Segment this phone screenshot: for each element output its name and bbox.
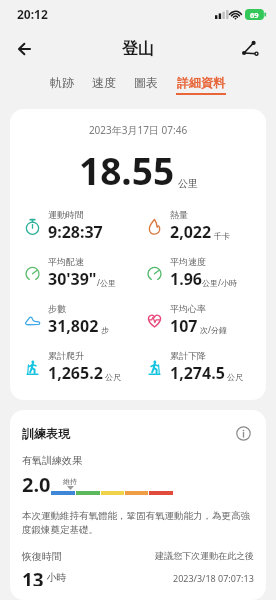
staticText: 平均速度 [170,256,206,267]
staticText: 1,265.2 [48,362,103,384]
staticText: 速度 [92,75,116,90]
staticText: 1.96 [170,268,202,290]
staticText: 軌跡 [50,75,74,90]
button[interactable]: 軌跡 [48,73,76,97]
staticText: 運動時間 [48,209,84,220]
staticText: 次/分鐘 [198,324,228,335]
staticText: 107 [170,315,198,337]
staticText: 登山 [122,39,154,59]
staticText: 步 [99,324,110,335]
staticText: 訓練表現 [22,426,70,441]
staticText: 建議您下次運動在此之後 [155,550,254,561]
staticText: 本次運動維持有氧體能，鞏固有氧運動能力，為更高強度鍛煉奠定基礎。 [22,510,254,536]
button[interactable]: Share [230,29,270,69]
staticText: 1,274.5 [170,362,225,384]
staticText: 公里/小時 [202,277,237,288]
staticText: 公里 [178,177,198,190]
staticText: 累計下降 [170,350,206,361]
button[interactable]: 詳細資料 [174,73,228,97]
staticText: 公尺 [225,371,244,382]
staticText: 2023年3月17日 07:46 [10,123,266,137]
staticText: 恢復時間 [22,550,62,563]
staticText: 熱量 [170,209,188,220]
staticText: 有氧訓練效果 [22,454,82,467]
staticText: 31,802 [48,315,99,337]
staticText: /公里 [97,277,116,288]
staticText: 2,022 [170,221,212,243]
staticText: 圖表 [134,75,158,90]
staticText: 30'39" [48,268,97,290]
staticText: 2.0 [22,471,51,498]
staticText: 公尺 [103,371,122,382]
staticText: 13 [22,567,44,586]
staticText: 平均配速 [48,256,84,267]
button[interactable]: Back [6,29,46,69]
staticText: 平均心率 [170,303,206,314]
staticText: 18.55 [79,145,175,195]
staticText: 詳細資料 [177,75,225,90]
staticText: 2023/3/18 07:07:13 [173,572,254,584]
button[interactable]: 圖表 [132,73,160,97]
staticText: 小時 [44,570,67,584]
button[interactable]: Info [232,422,254,444]
staticText: 9:28:37 [48,221,103,243]
staticText: 千卡 [212,230,231,241]
staticText: 20:12 [17,6,48,22]
staticText: 累計爬升 [48,350,84,361]
button[interactable]: 速度 [90,73,118,97]
staticText: 69 [250,10,259,20]
staticText: 步數 [48,303,66,314]
staticText: 維持 [63,477,77,486]
